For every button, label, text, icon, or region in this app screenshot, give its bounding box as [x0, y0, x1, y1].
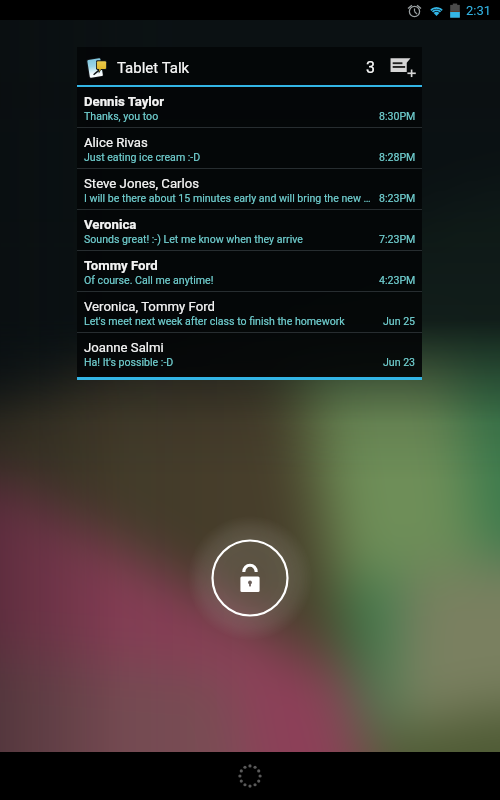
- staticText: 8:23PM: [379, 192, 416, 204]
- staticText: Just eating ice cream :-D: [84, 151, 373, 163]
- button[interactable]: Home: [232, 758, 268, 794]
- staticText: Tommy Ford: [84, 258, 158, 273]
- staticText: 3: [366, 58, 375, 77]
- staticText: Tablet Talk: [117, 59, 190, 77]
- staticText: Of course. Call me anytime!: [84, 274, 373, 286]
- staticText: Jun 23: [383, 356, 416, 368]
- staticText: Jun 25: [383, 315, 416, 327]
- staticText: Ha! It's possible :-D: [84, 356, 377, 368]
- staticText: Veronica, Tommy Ford: [84, 299, 215, 314]
- button[interactable]: Unlock: [210, 538, 290, 618]
- staticText: Dennis Taylor: [84, 94, 165, 109]
- button[interactable]: New message: [387, 50, 419, 85]
- button[interactable]: Veronica: [77, 210, 422, 250]
- staticText: Veronica: [84, 217, 137, 232]
- staticText: Steve Jones, Carlos: [84, 176, 200, 191]
- button[interactable]: Alice Rivas: [77, 128, 422, 168]
- staticText: 7:23PM: [379, 233, 416, 245]
- button[interactable]: Joanne Salmi: [77, 333, 422, 373]
- staticText: Joanne Salmi: [84, 340, 164, 355]
- staticText: Alice Rivas: [84, 135, 148, 150]
- staticText: Thanks, you too: [84, 110, 373, 122]
- staticText: I will be there about 15 minutes early a…: [84, 192, 373, 204]
- button[interactable]: Dennis Taylor: [77, 87, 422, 127]
- button[interactable]: Tablet Talk: [77, 47, 422, 85]
- button[interactable]: Steve Jones, Carlos: [77, 169, 422, 209]
- staticText: Sounds great! :-) Let me know when they …: [84, 233, 373, 245]
- staticText: 8:30PM: [379, 110, 416, 122]
- staticText: 4:23PM: [379, 274, 416, 286]
- button[interactable]: Veronica, Tommy Ford: [77, 292, 422, 332]
- staticText: 8:28PM: [379, 151, 416, 163]
- staticText: 2:31: [466, 3, 492, 18]
- button[interactable]: Tommy Ford: [77, 251, 422, 291]
- staticText: Let's meet next week after class to fini…: [84, 315, 377, 327]
